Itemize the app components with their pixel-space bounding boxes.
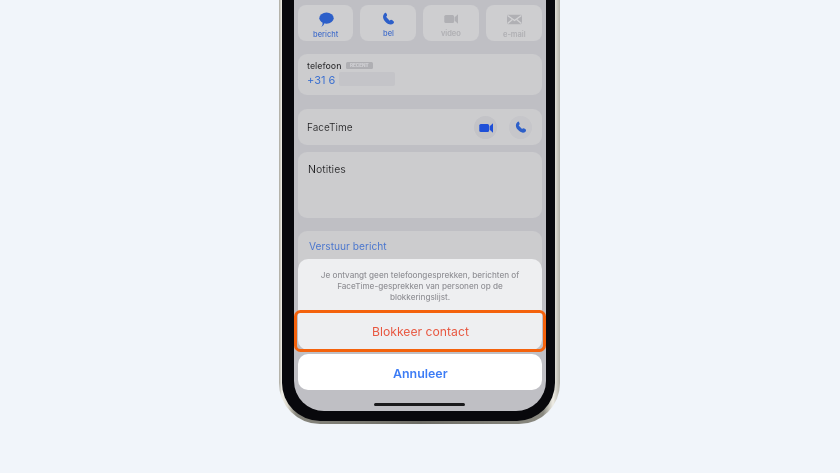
staticText: Je ontvangt geen telefoongesprekken, ber…: [314, 270, 526, 302]
button[interactable]: FaceTime audio: [509, 116, 532, 139]
staticText: FaceTime: [307, 121, 353, 133]
staticText: RECENT: [350, 63, 369, 69]
button[interactable]: Verstuur bericht: [298, 231, 542, 271]
button[interactable]: bericht: [298, 5, 353, 41]
staticText: e-mail: [503, 30, 526, 39]
staticText: +31 6: [307, 73, 336, 86]
staticText: telefoon: [307, 60, 342, 71]
button[interactable]: Annuleer: [298, 354, 542, 390]
staticText: Verstuur bericht: [309, 240, 387, 252]
staticText: Blokkeer contact: [372, 324, 469, 339]
button[interactable]: video: [423, 5, 479, 41]
staticText: Annuleer: [393, 366, 448, 381]
button[interactable]: FaceTime video: [474, 116, 497, 139]
staticText: Notities: [308, 163, 346, 176]
button[interactable]: bel: [360, 5, 416, 41]
button[interactable]: e-mail: [486, 5, 542, 41]
staticText: bericht: [313, 30, 339, 39]
button[interactable]: FaceTime: [298, 109, 542, 145]
staticText: bel: [383, 29, 394, 38]
staticText: video: [441, 29, 461, 38]
button[interactable]: Blokkeer contact: [298, 313, 542, 350]
button[interactable]: telefoon: [298, 54, 542, 95]
button[interactable]: Notities: [298, 152, 542, 218]
